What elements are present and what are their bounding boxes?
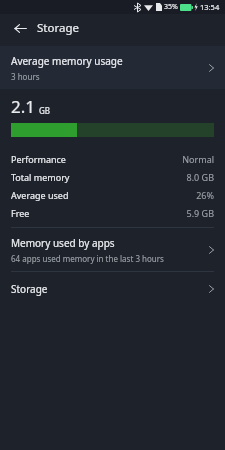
staticText: 8.0 GB [186, 171, 214, 183]
staticText: 3 hours [11, 71, 40, 82]
staticText: GB [39, 105, 51, 116]
staticText: Performance [11, 153, 66, 165]
staticText: 5.9 GB [186, 207, 214, 219]
staticText: 2.1 [11, 95, 36, 118]
staticText: 13:54 [200, 2, 220, 12]
staticText: 35% [164, 2, 178, 12]
staticText: Total memory [11, 171, 70, 183]
staticText: Average used [11, 189, 69, 201]
staticText: 64 apps used memory in the last 3 hours [11, 253, 164, 264]
button[interactable]: Memory used by apps [0, 228, 225, 271]
button[interactable]: Back [9, 17, 31, 39]
staticText: Storage [11, 282, 48, 296]
staticText: Memory used by apps [11, 236, 115, 250]
button[interactable]: Storage [0, 272, 225, 306]
staticText: 26% [196, 189, 214, 201]
staticText: Normal [182, 153, 214, 165]
button[interactable]: Average memory usage [0, 46, 225, 89]
staticText: Storage [37, 20, 79, 36]
staticText: Average memory usage [11, 54, 123, 68]
staticText: Free [11, 207, 30, 219]
